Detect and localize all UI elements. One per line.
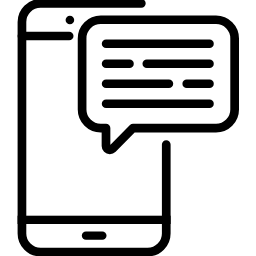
button[interactable]: Phone message — [0, 0, 256, 256]
